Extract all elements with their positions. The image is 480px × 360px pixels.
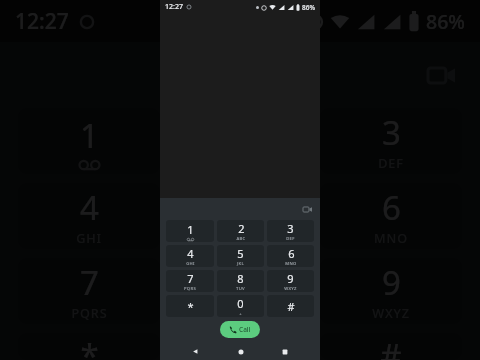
staticText: # [287, 299, 295, 314]
button[interactable]: Recent apps [276, 343, 293, 360]
button[interactable]: 6 [320, 183, 462, 249]
button[interactable]: 4 [18, 183, 160, 249]
button[interactable]: Video call [300, 202, 314, 216]
staticText: + [239, 311, 242, 317]
staticText: GHI [186, 261, 195, 267]
button[interactable]: Home [232, 343, 249, 360]
staticText: DEF [286, 236, 295, 242]
button[interactable]: * [166, 295, 214, 317]
button[interactable]: 9 [267, 270, 314, 292]
staticText: * [187, 299, 194, 314]
staticText: ABC [236, 236, 246, 242]
staticText: PQRS [184, 286, 196, 292]
button[interactable]: 0 [169, 333, 311, 360]
button[interactable]: 3 [320, 108, 462, 174]
button[interactable]: 5 [217, 245, 264, 267]
button[interactable]: Call [220, 321, 260, 338]
staticText: 8 [231, 260, 250, 305]
staticText: MNO [374, 230, 408, 247]
button[interactable]: 8 [169, 258, 311, 324]
staticText: GHI [76, 230, 102, 247]
button[interactable]: 8 [217, 270, 264, 292]
staticText: 3 [382, 110, 401, 155]
staticText: 9 [287, 271, 294, 286]
button[interactable]: 5 [169, 183, 311, 249]
staticText: 12:27 [165, 2, 183, 12]
staticText: 5 [231, 185, 250, 230]
staticText: 4 [187, 246, 194, 261]
staticText: 0 [231, 333, 250, 360]
staticText: 7 [187, 271, 194, 286]
staticText: 3 [287, 221, 294, 236]
button[interactable]: 4 [166, 245, 214, 267]
staticText: Call [239, 325, 251, 334]
button[interactable]: # [267, 295, 314, 317]
button[interactable]: 3 [267, 220, 314, 242]
staticText: PQRS [71, 305, 108, 322]
staticText: DEF [378, 155, 404, 172]
staticText: MNO [285, 261, 297, 267]
staticText: 7 [80, 260, 99, 305]
staticText: # [380, 333, 402, 360]
staticText: 1 [187, 222, 194, 237]
staticText: 86% [302, 3, 315, 12]
staticText: JKL [237, 261, 244, 267]
button[interactable]: 7 [166, 270, 214, 292]
staticText: 6 [382, 185, 401, 230]
button[interactable]: 6 [267, 245, 314, 267]
staticText: 2 [238, 221, 245, 236]
button[interactable]: 1 [166, 220, 214, 242]
button[interactable]: Back [187, 343, 204, 360]
button[interactable]: 9 [320, 258, 462, 324]
staticText: 9 [382, 260, 401, 305]
staticText: 5 [237, 246, 244, 261]
staticText: 86% [426, 8, 465, 35]
staticText: 0 [237, 296, 244, 311]
staticText: WXYZ [284, 286, 297, 292]
button[interactable]: # [320, 333, 462, 360]
staticText: 1 [80, 113, 99, 158]
staticText: 4 [80, 185, 99, 230]
staticText: JKL [229, 230, 251, 247]
staticText: 12:27 [15, 7, 69, 36]
staticText: * [80, 333, 99, 360]
staticText: TUV [236, 286, 245, 292]
button[interactable]: * [18, 333, 160, 360]
button[interactable]: 0 [217, 295, 264, 317]
staticText: 8 [237, 271, 244, 286]
staticText: WXYZ [372, 305, 410, 322]
staticText: TUV [227, 305, 254, 322]
button[interactable]: 2 [217, 220, 264, 242]
staticText: 6 [288, 246, 295, 261]
